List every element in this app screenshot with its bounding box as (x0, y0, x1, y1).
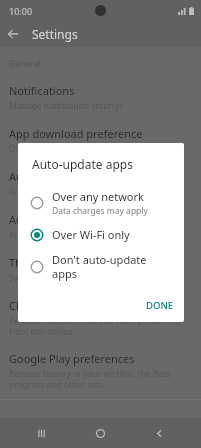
staticText: Any (9, 229, 191, 241)
button[interactable]: Auto-play videos (0, 205, 201, 248)
button[interactable]: Auto-update apps (0, 162, 201, 205)
button[interactable]: Recent apps (12, 418, 71, 448)
staticText: Auto-update apps (32, 156, 133, 172)
button[interactable]: Over any network (18, 184, 184, 222)
staticText: Manage notification settings (9, 100, 191, 112)
staticText: Over Wi-Fi only (52, 227, 130, 242)
staticText: Google Play preferences (9, 351, 135, 366)
staticText: System default (9, 272, 191, 284)
staticText: Remove history in your wishlist, the Bet… (9, 368, 191, 390)
button[interactable]: Home (71, 418, 130, 448)
button[interactable]: DONE (136, 295, 184, 316)
button[interactable]: Navigate up (0, 21, 26, 47)
button[interactable]: Google Play preferences (0, 344, 201, 397)
button[interactable]: Back (130, 418, 189, 448)
staticText: Settings (32, 26, 78, 42)
staticText: Clear local search history (9, 298, 138, 313)
button[interactable]: Notifications (0, 76, 201, 119)
staticText: Over any network (52, 189, 144, 204)
staticText: Don't auto-update apps (52, 252, 174, 281)
button[interactable]: Don't auto-update apps (18, 247, 184, 286)
staticText: Remove searches that you have performed … (9, 315, 191, 337)
staticText: Auto-update apps (9, 169, 102, 184)
button[interactable]: App download preference (0, 119, 201, 162)
staticText: Data charges may apply (52, 205, 148, 217)
button[interactable]: Over Wi-Fi only (18, 222, 184, 247)
staticText: Auto-play videos (9, 212, 95, 227)
button[interactable]: Clear local search history (0, 291, 201, 344)
button[interactable]: Themes (0, 248, 201, 291)
staticText: DONE (146, 299, 174, 312)
staticText: Themes (9, 255, 50, 270)
staticText: App download preference (9, 126, 143, 141)
staticText: Notifications (9, 83, 75, 98)
staticText: Over any network (9, 143, 191, 155)
staticText: Any (9, 186, 191, 198)
staticText: 10:00 (9, 5, 33, 17)
staticText: General (9, 58, 41, 70)
